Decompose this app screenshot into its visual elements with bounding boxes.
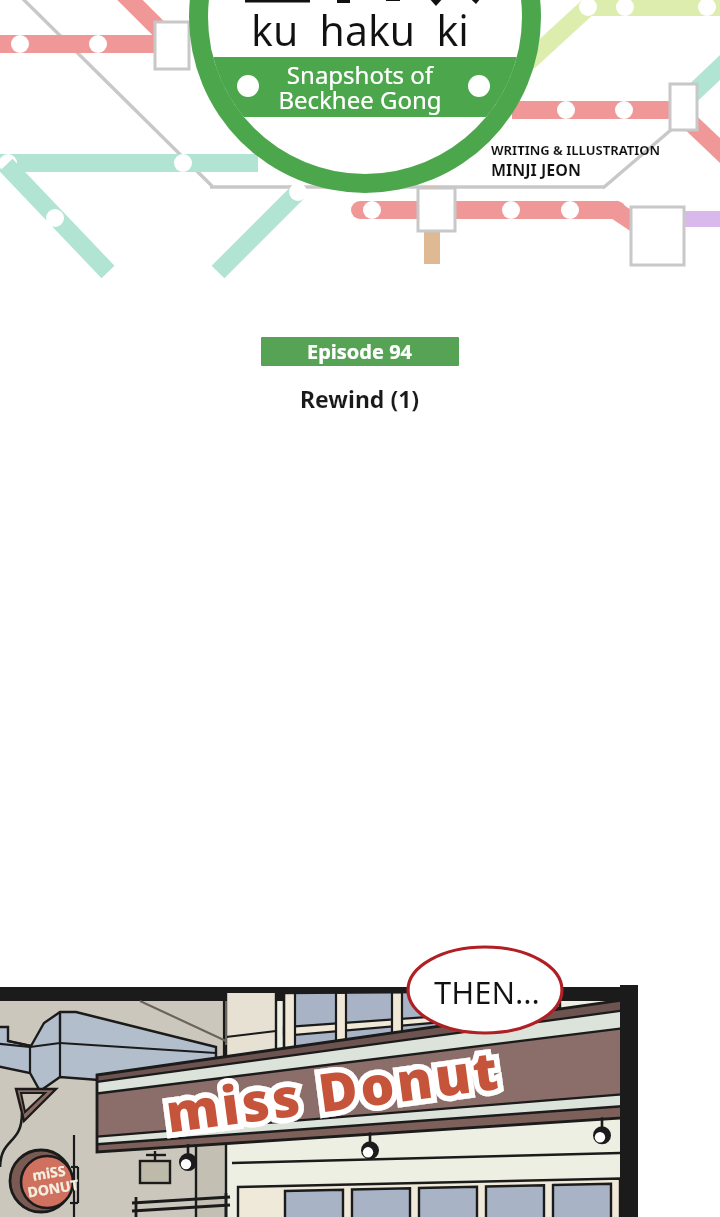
staticText: ku haku ki xyxy=(251,2,469,58)
staticText: MINJI JEON xyxy=(491,159,581,181)
staticText: Episode 94 xyxy=(307,338,413,365)
staticText: THEN... xyxy=(434,971,540,1013)
staticText: WRITING & ILLUSTRATION xyxy=(491,141,661,159)
staticText: Rewind (1) xyxy=(300,383,420,414)
staticText: miss Donut xyxy=(161,1032,505,1148)
button[interactable]: Episode 94 xyxy=(261,337,459,366)
staticText: Snapshots of Beckhee Gong xyxy=(278,58,442,116)
staticText: miSS DONUT xyxy=(20,1159,80,1202)
staticText: miss Donut xyxy=(161,1032,505,1148)
